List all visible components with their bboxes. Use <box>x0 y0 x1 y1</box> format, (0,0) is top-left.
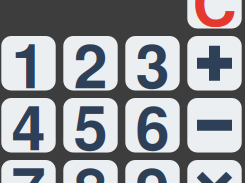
staticText: 8 <box>73 143 107 183</box>
button[interactable]: C <box>187 0 242 28</box>
button[interactable]: 7 <box>1 160 56 183</box>
staticText: 9 <box>135 143 169 183</box>
button[interactable]: 4 <box>1 98 56 152</box>
button[interactable]: 8 <box>63 160 118 183</box>
staticText: × <box>191 134 237 183</box>
staticText: 4 <box>11 81 45 169</box>
staticText: C <box>192 0 236 45</box>
staticText: 6 <box>135 81 169 169</box>
staticText: 3 <box>135 19 169 107</box>
staticText: 1 <box>11 19 45 107</box>
button[interactable]: 1 <box>1 36 56 90</box>
button[interactable] <box>187 98 242 152</box>
button[interactable]: 2 <box>63 36 118 90</box>
button[interactable]: × <box>187 160 242 183</box>
button[interactable]: 9 <box>125 160 180 183</box>
staticText: 7 <box>11 143 45 183</box>
button[interactable]: 6 <box>125 98 180 152</box>
button[interactable]: 5 <box>63 98 118 152</box>
staticText: 2 <box>73 19 107 107</box>
button[interactable]: 3 <box>125 36 180 90</box>
button[interactable] <box>187 36 242 90</box>
staticText: 5 <box>73 81 107 169</box>
